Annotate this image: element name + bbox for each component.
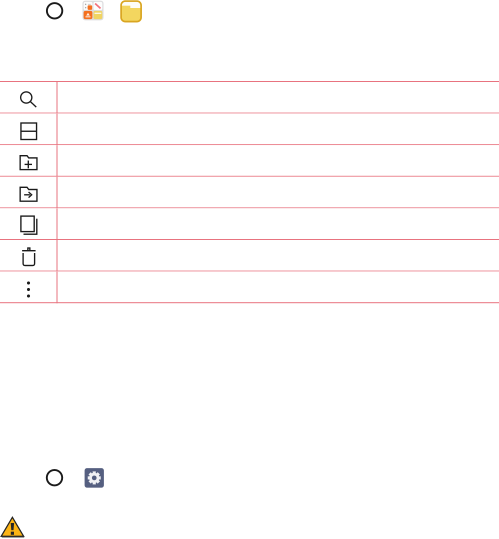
button[interactable]: Duplicate: [0, 208, 499, 240]
button[interactable]: Split view: [0, 114, 499, 145]
button[interactable]: Settings: [85, 468, 104, 488]
button[interactable]: New folder: [0, 145, 499, 177]
button[interactable]: All apps: [82, 1, 103, 20]
button[interactable]: Files: [121, 1, 141, 22]
button[interactable]: Search: [0, 82, 499, 114]
button[interactable]: More: [0, 272, 499, 303]
button[interactable]: Record: [46, 469, 63, 486]
button[interactable]: Record: [46, 2, 63, 19]
button[interactable]: Delete: [0, 240, 499, 272]
button[interactable]: Move to folder: [0, 177, 499, 208]
